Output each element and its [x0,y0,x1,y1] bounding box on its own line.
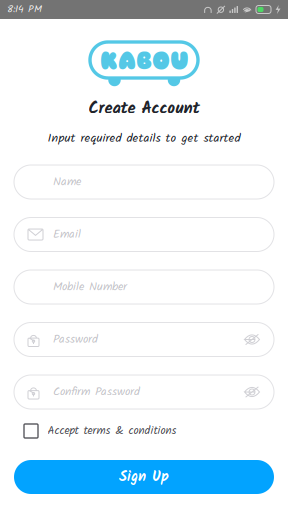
staticText: KABOU [100,47,188,76]
button[interactable]: Sign Up [14,460,274,494]
staticText: 8:14 PM [7,1,42,18]
staticText: Sign Up [119,465,169,489]
button[interactable]: Name [14,165,274,199]
button[interactable]: Confirm Password [14,375,274,409]
staticText: Password [53,330,98,349]
button[interactable]: Accept terms & conditions [24,424,176,438]
button[interactable]: Password [14,322,274,356]
staticText: Input required details to get started [47,129,240,148]
button[interactable]: Mobile Number [14,270,274,304]
staticText: Email [53,225,81,244]
staticText: Confirm Password [53,382,140,401]
staticText: Accept terms & conditions [47,422,176,440]
staticText: Name [53,172,81,191]
button[interactable]: Email [14,217,274,251]
staticText: Mobile Number [53,277,127,296]
staticText: Create Account [88,96,199,122]
